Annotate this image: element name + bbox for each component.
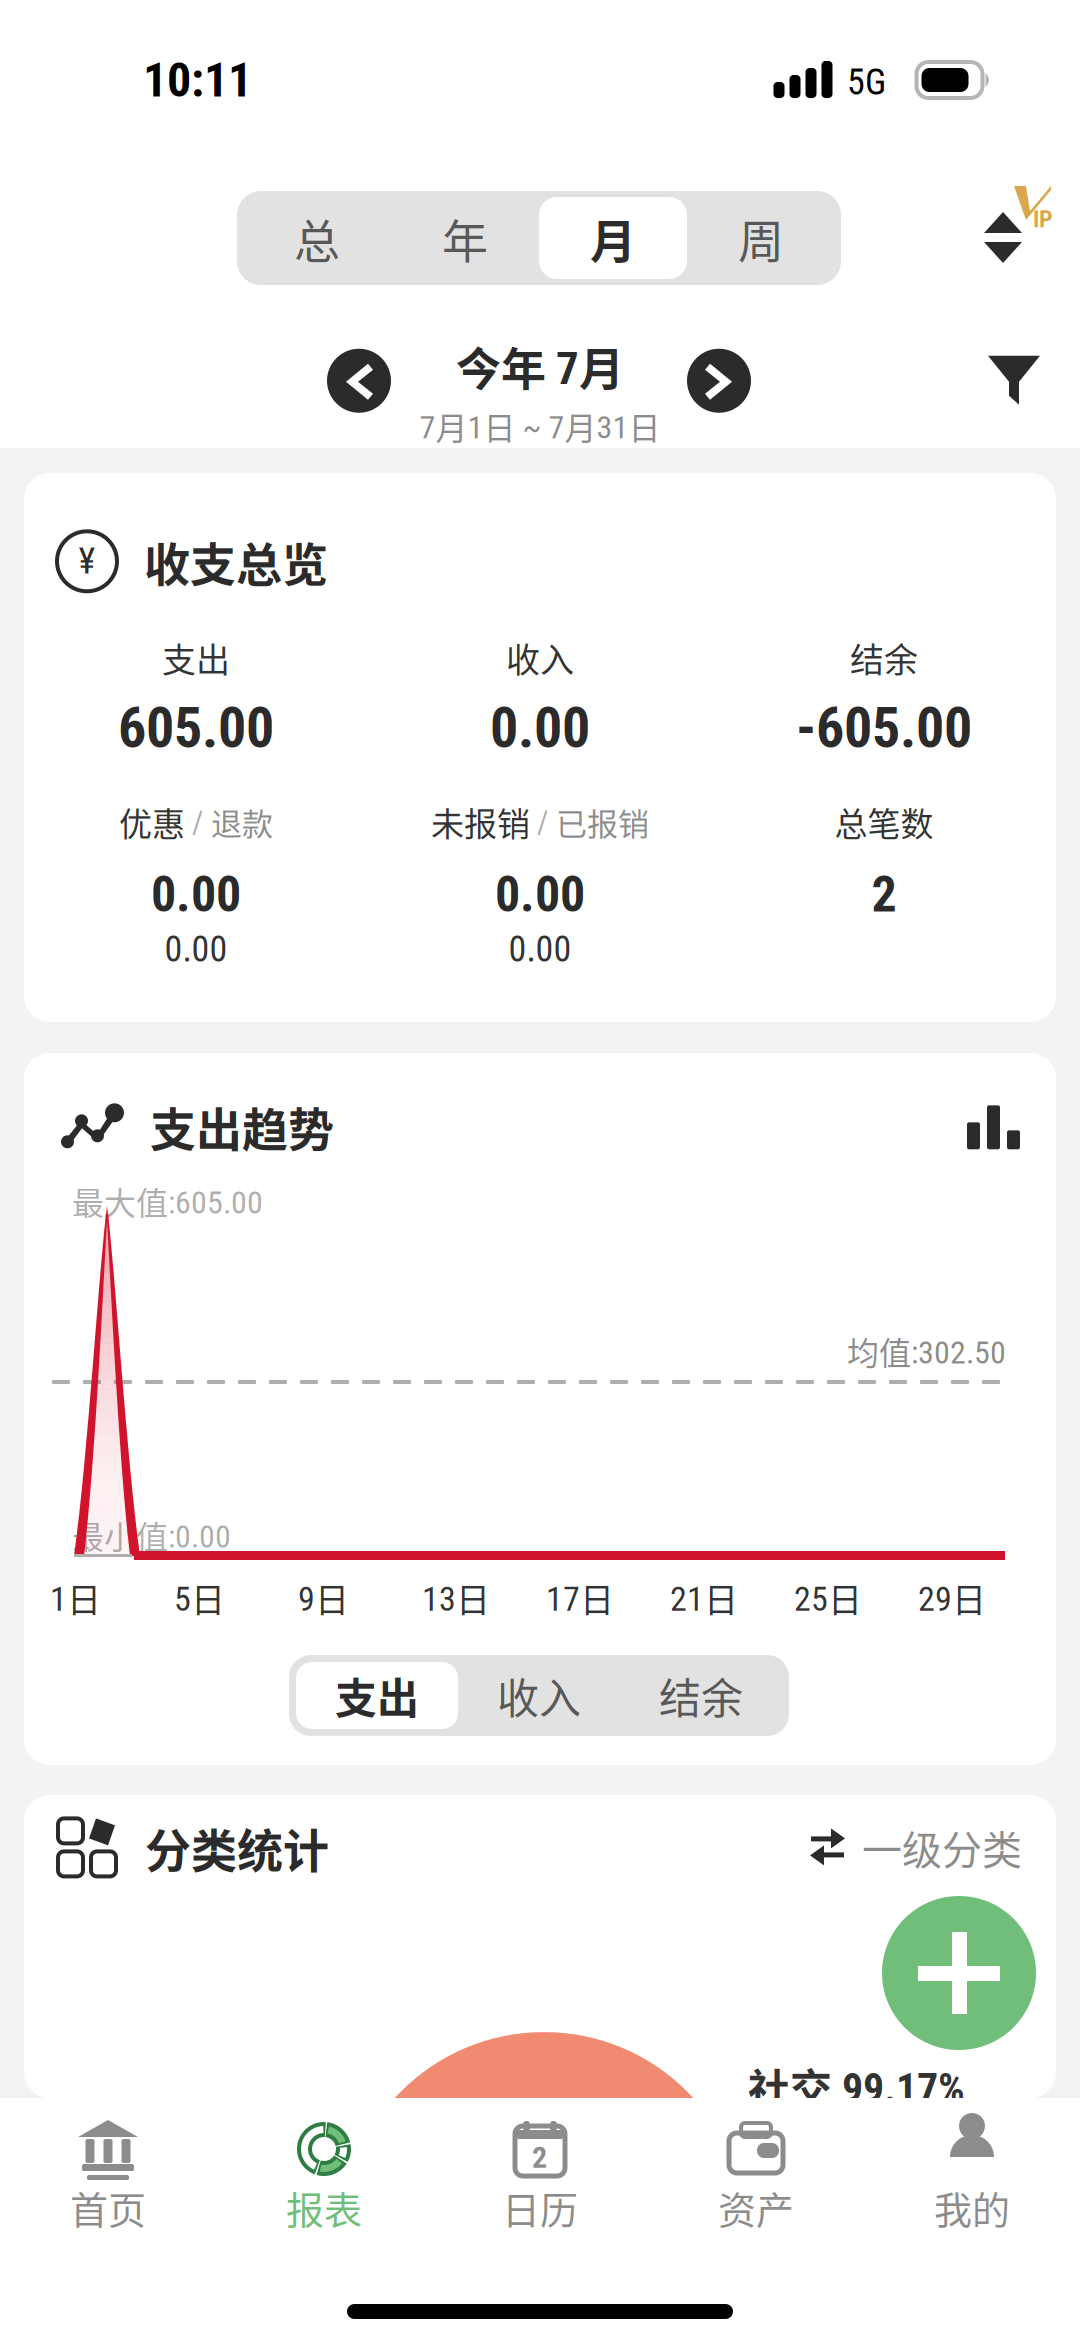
button[interactable]: 周: [687, 197, 835, 279]
staticText: 5日: [174, 1573, 225, 1622]
button[interactable]: Previous month: [327, 349, 391, 413]
staticText: 0.00: [490, 695, 590, 761]
staticText: 10:11: [143, 52, 252, 108]
staticText: 收入: [506, 633, 574, 682]
staticText: 周: [738, 205, 784, 271]
button[interactable]: 首页: [0, 2118, 216, 2235]
staticText: 2: [532, 2140, 547, 2175]
staticText: 9日: [298, 1573, 349, 1622]
staticText: 总笔数: [834, 798, 933, 846]
button[interactable]: Next month: [687, 349, 751, 413]
staticText: 未报销: [431, 798, 530, 846]
staticText: 支出: [335, 1665, 419, 1726]
staticText: 0.00: [495, 865, 585, 924]
staticText: 我的: [934, 2180, 1010, 2235]
button[interactable]: 支出: [296, 1662, 458, 1729]
staticText: 605.00: [118, 695, 274, 761]
button[interactable]: 收入: [458, 1662, 620, 1729]
staticText: 日历: [502, 2180, 578, 2235]
staticText: 均值:302.50: [847, 1328, 1006, 1374]
staticText: 1日: [50, 1573, 101, 1622]
staticText: 支出趋势: [150, 1093, 334, 1160]
staticText: 今年 7月: [456, 334, 624, 399]
staticText: ¥: [78, 540, 95, 582]
button[interactable]: 我的: [864, 2118, 1080, 2235]
staticText: 0.00: [164, 928, 227, 970]
staticText: 29日: [918, 1573, 986, 1622]
staticText: 报表: [286, 2180, 362, 2235]
button[interactable]: 资产: [648, 2118, 864, 2235]
staticText: 收支总览: [144, 528, 328, 595]
button[interactable]: 月: [539, 197, 687, 279]
staticText: 分类统计: [145, 1814, 329, 1881]
button[interactable]: 年: [391, 197, 539, 279]
button[interactable]: 一级分类: [808, 1818, 1022, 1876]
staticText: 结余: [659, 1665, 743, 1726]
staticText: 2: [871, 865, 896, 924]
staticText: 收入: [497, 1665, 581, 1726]
button[interactable]: 2: [432, 2118, 648, 2235]
staticText: 最大值:605.00: [72, 1178, 263, 1224]
staticText: 25日: [794, 1573, 862, 1622]
button[interactable]: 结余: [620, 1662, 782, 1729]
staticText: 月: [590, 205, 636, 271]
button[interactable]: 报表: [216, 2118, 432, 2235]
staticText: 支出: [162, 633, 230, 682]
staticText: 0.00: [508, 928, 571, 970]
staticText: IP: [1033, 205, 1053, 233]
staticText: 0.00: [151, 865, 241, 924]
staticText: /: [185, 804, 211, 840]
staticText: 优惠: [119, 798, 185, 846]
staticText: 已报销: [556, 799, 649, 844]
staticText: 17日: [546, 1573, 614, 1622]
staticText: -605.00: [796, 695, 972, 761]
staticText: 13日: [422, 1573, 490, 1622]
staticText: 退款: [211, 799, 273, 844]
button[interactable]: Change sort order: [980, 184, 1080, 294]
button[interactable]: Filter: [987, 354, 1041, 408]
staticText: 一级分类: [862, 1818, 1022, 1876]
staticText: 结余: [850, 633, 918, 682]
staticText: 21日: [670, 1573, 738, 1622]
staticText: 5G: [847, 61, 886, 103]
staticText: 资产: [718, 2180, 794, 2235]
staticText: 7月1日 ~ 7月31日: [419, 403, 660, 449]
staticText: 总: [294, 205, 340, 271]
button[interactable]: Add record: [882, 1896, 1036, 2050]
staticText: 首页: [70, 2180, 146, 2235]
staticText: 年: [442, 205, 488, 271]
button[interactable]: 总: [243, 197, 391, 279]
staticText: 最小值:0.00: [72, 1512, 231, 1558]
staticText: 社交 99.17%: [748, 2056, 965, 2117]
staticText: /: [530, 804, 556, 840]
